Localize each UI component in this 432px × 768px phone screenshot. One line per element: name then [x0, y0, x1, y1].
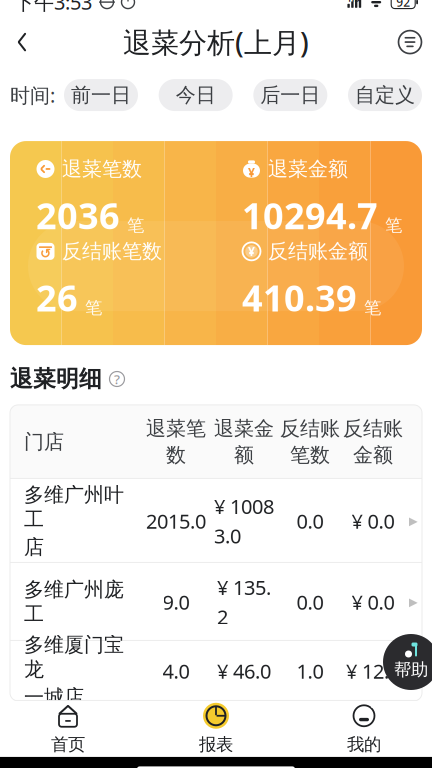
button[interactable]: 前一日: [64, 79, 138, 111]
button[interactable]: 报表: [142, 701, 290, 757]
staticText: 92: [396, 0, 410, 10]
button[interactable]: 自定义: [348, 79, 422, 111]
staticText: ▶: [408, 664, 417, 678]
staticText: 2: [217, 603, 228, 630]
button[interactable]: 今日: [159, 79, 233, 111]
button[interactable]: 帮助: [376, 634, 432, 690]
staticText: 门店: [24, 430, 64, 454]
button[interactable]: 多维厦门宝龙: [10, 641, 422, 701]
staticText: ¥ 1008: [214, 493, 274, 519]
staticText: 金额: [353, 443, 393, 467]
staticText: 退菜明细: [10, 365, 102, 393]
staticText: 一城店: [24, 685, 84, 709]
staticText: 店: [24, 535, 44, 559]
staticText: ▶: [408, 595, 417, 609]
button[interactable]: 说明: [108, 370, 126, 388]
button[interactable]: 返回: [0, 19, 44, 65]
staticText: 退菜金: [214, 416, 274, 441]
staticText: 410.39: [242, 274, 357, 321]
staticText: ¥ 0.0: [351, 589, 394, 615]
button[interactable]: 我的: [290, 701, 432, 757]
staticText: 退菜金额: [268, 157, 348, 181]
staticText: 9.0: [162, 589, 189, 615]
staticText: 反结账笔数: [62, 239, 162, 264]
staticText: 反结账金额: [268, 239, 368, 264]
button[interactable]: 菜单: [388, 19, 432, 65]
staticText: ¥: [248, 164, 255, 180]
staticText: 自定义: [355, 83, 415, 107]
staticText: 反结账: [343, 416, 403, 441]
button[interactable]: 后一日: [253, 79, 327, 111]
staticText: 1.0: [296, 658, 323, 684]
staticText: 多维广州叶工: [24, 483, 124, 532]
staticText: ?: [114, 370, 120, 388]
button[interactable]: 多维广州叶工: [10, 479, 422, 563]
staticText: 退菜笔数: [62, 157, 142, 181]
staticText: ▶: [408, 514, 417, 528]
staticText: 下午3:53: [14, 0, 92, 15]
staticText: 退菜笔: [146, 416, 206, 441]
staticText: 后一日: [260, 83, 320, 107]
staticText: ¥ 12.0: [346, 658, 400, 684]
staticText: 3.0: [214, 522, 241, 549]
button[interactable]: 首页: [0, 701, 142, 757]
staticText: 我的: [347, 734, 381, 755]
staticText: 数: [166, 443, 186, 467]
staticText: 2015.0: [146, 508, 206, 534]
staticText: 前一日: [71, 83, 131, 107]
staticText: 笔: [85, 297, 102, 318]
staticText: 0.0: [296, 589, 323, 615]
staticText: ¥ 46.0: [217, 658, 271, 684]
staticText: ¥: [248, 243, 255, 259]
staticText: 0.0: [296, 508, 323, 534]
staticText: 首页: [51, 734, 85, 755]
staticText: 多维广州庞工: [24, 577, 124, 626]
staticText: 4.0: [162, 658, 189, 684]
staticText: 笔: [364, 297, 381, 318]
staticText: 时间:: [10, 82, 55, 108]
button[interactable]: 多维广州庞工: [10, 563, 422, 641]
staticText: ↺: [40, 246, 51, 261]
staticText: 报表: [199, 734, 233, 755]
staticText: HD: [348, 0, 360, 4]
staticText: 10294.7: [242, 191, 378, 239]
staticText: 多维厦门宝龙: [24, 633, 124, 682]
staticText: 2036: [36, 191, 120, 239]
staticText: 笔数: [290, 443, 330, 467]
staticText: 26: [36, 274, 78, 321]
staticText: 今日: [176, 83, 216, 107]
staticText: ¥ 135.: [217, 574, 271, 600]
staticText: 反结账: [280, 416, 340, 441]
staticText: ¥ 0.0: [351, 508, 394, 534]
staticText: 帮助: [394, 659, 428, 680]
staticText: 额: [234, 443, 254, 467]
staticText: 笔: [127, 215, 144, 236]
staticText: 笔: [385, 215, 402, 236]
staticText: 退菜分析(上月): [123, 23, 309, 61]
